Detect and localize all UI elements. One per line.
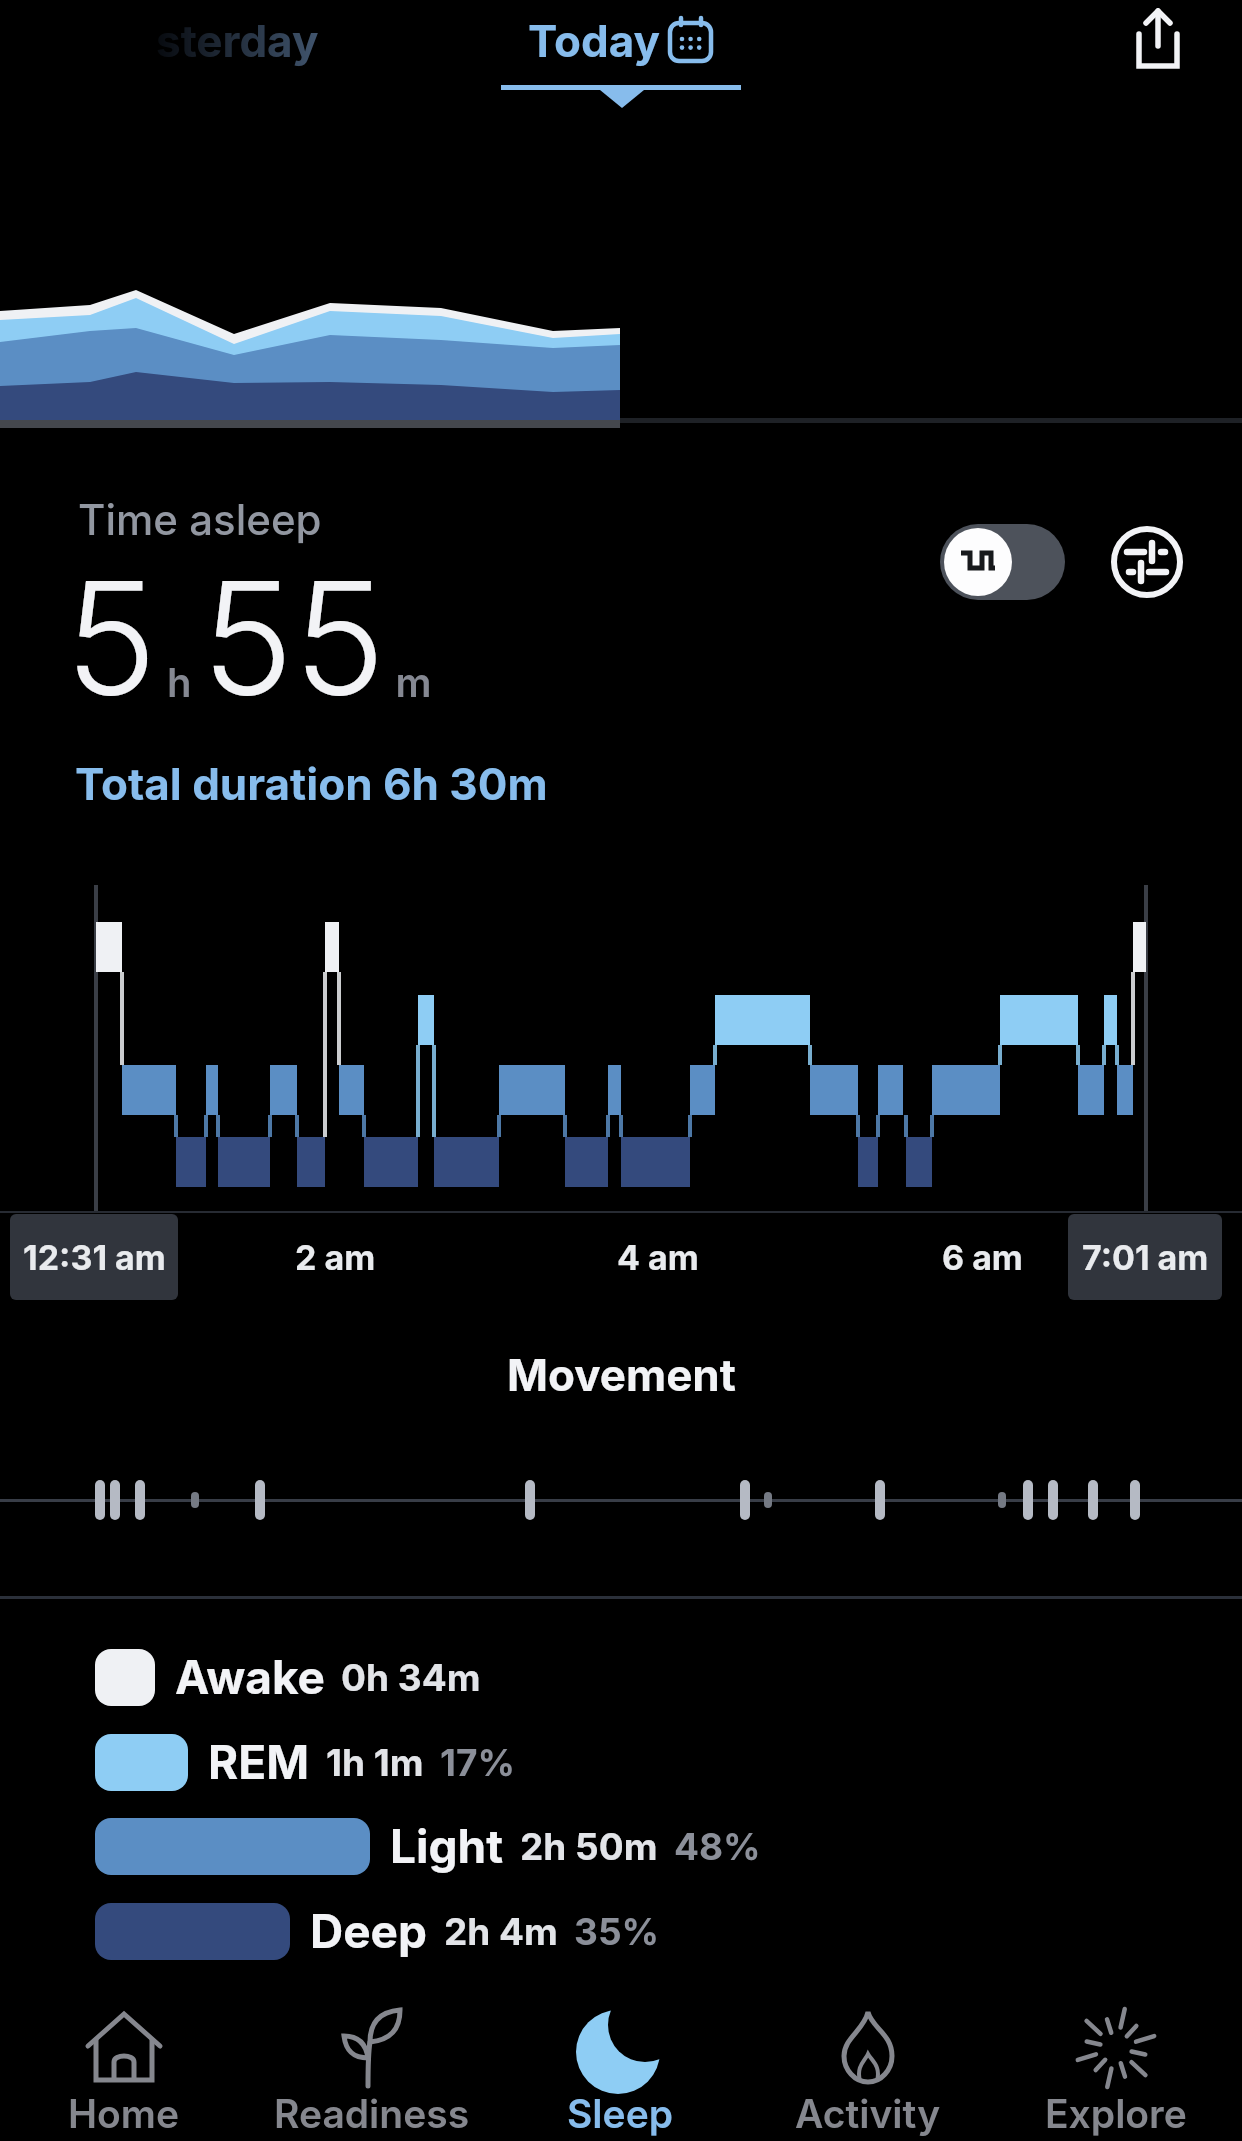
button[interactable]: Awake [95,1648,481,1706]
staticText: Activity [795,2090,941,2137]
staticText: Movement [507,1348,736,1401]
button[interactable]: Deep [95,1902,660,1960]
staticText: Awake [175,1649,325,1705]
staticText: 7:01 am [1082,1237,1209,1278]
staticText: 12:31 am [23,1237,166,1278]
button[interactable] [1111,526,1183,598]
staticText: Readiness [274,2090,470,2137]
button[interactable] [940,524,1065,600]
staticText: REM [208,1734,310,1790]
staticText: Time asleep [78,494,322,545]
button[interactable]: Readiness [248,2006,496,2141]
staticText: Total duration 6h 30m [75,757,548,810]
staticText: 2h 50m [520,1824,658,1869]
staticText: Home [68,2090,180,2137]
staticText: 2 am [295,1237,376,1278]
staticText: Sleep [567,2090,674,2137]
staticText: Light [390,1818,504,1874]
button[interactable]: Activity [744,2006,992,2141]
staticText: 6 am [942,1237,1023,1278]
staticText: Deep [310,1903,428,1959]
staticText: 35% [574,1909,660,1954]
button[interactable]: Today [500,4,760,108]
button[interactable]: Home [0,2006,248,2141]
staticText: 4 am [617,1237,699,1278]
staticText: 2h 4m [444,1909,558,1954]
staticText: Explore [1045,2090,1187,2137]
staticText: Today [528,14,660,67]
staticText: 5 h 55 m [65,544,432,732]
staticText: 17% [440,1740,516,1785]
button[interactable]: REM [95,1733,516,1791]
button[interactable]: sterday [156,14,319,67]
staticText: 0h 34m [341,1655,481,1700]
staticText: 48% [674,1824,761,1869]
button[interactable]: Sleep [496,2006,744,2141]
staticText: 1h 1m [326,1740,424,1785]
button[interactable] [1126,6,1190,70]
button[interactable]: Explore [992,2006,1240,2141]
button[interactable]: Light [95,1817,761,1875]
